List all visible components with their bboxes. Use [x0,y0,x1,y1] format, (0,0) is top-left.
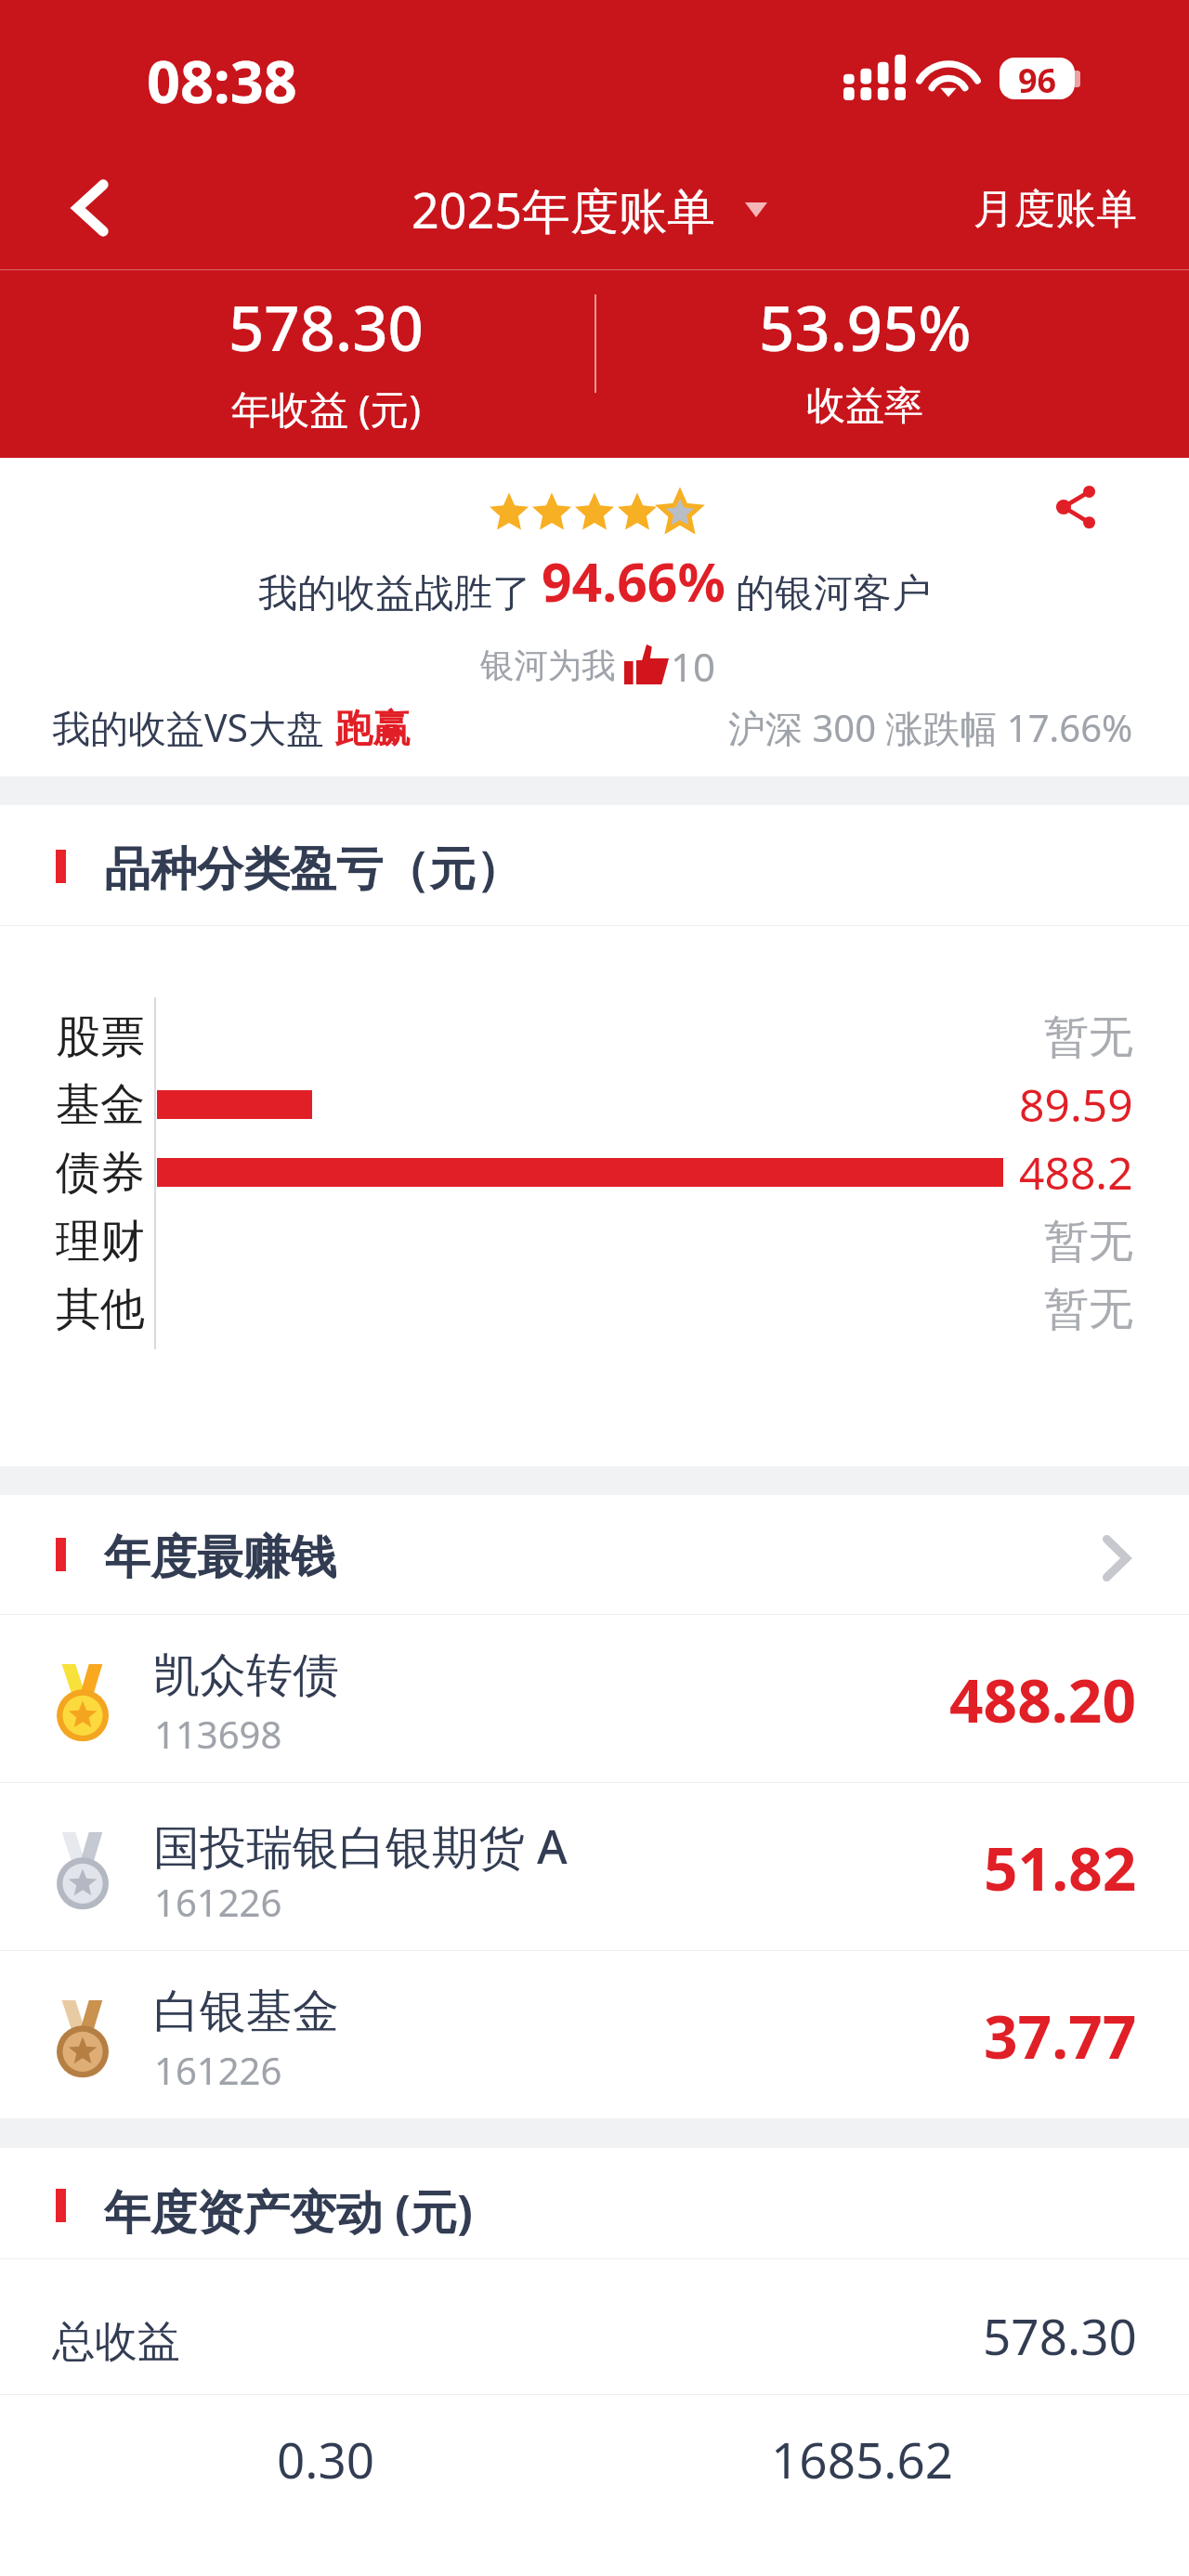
staticText: 国投瑞银白银期货 A [153,1815,568,1878]
staticText: 总收益 [52,2315,180,2369]
staticText: 其他 [56,1281,145,1337]
other: More [1103,1535,1130,1581]
staticText: 10 [671,640,716,693]
staticText: 2025年度账单 [412,176,715,242]
staticText: 37.77 [984,1996,1137,2076]
staticText: 收益率 [806,382,923,431]
staticText: 578.30 [983,2302,1137,2369]
staticText: 跑赢 [334,705,411,753]
staticText: 51.82 [984,1828,1137,1908]
staticText: 53.95% [759,284,972,369]
button[interactable]: Back [63,176,111,240]
staticText: 基金 [56,1077,145,1133]
button[interactable]: 国投瑞银白银期货 A [0,1783,1189,1950]
staticText: 0.30 [277,2426,375,2492]
staticText: 578.30 [229,284,424,369]
staticText: 股票 [56,1009,145,1065]
staticText: 08:38 [147,41,297,121]
staticText: 488.2 [1019,1142,1133,1203]
staticText: 96 [1018,58,1057,99]
staticText: 161226 [154,1877,282,1927]
staticText: 161226 [154,2045,282,2095]
staticText: 暂无 [1044,1009,1133,1065]
staticText: 凯众转债 [153,1646,339,1705]
staticText: 我的收益VS大盘 [52,701,334,753]
staticText: 488.20 [949,1659,1137,1740]
button[interactable]: 凯众转债 [0,1615,1189,1782]
staticText: 94.66% [542,545,725,618]
staticText: 沪深 300 涨跌幅 17.66% [728,702,1133,753]
button[interactable]: 年度最赚钱 [0,1495,1189,1614]
staticText: 债券 [56,1145,145,1201]
staticText: 银河为我 [480,644,616,687]
staticText: 白银基金 [153,1983,339,2041]
staticText: 113698 [154,1709,282,1759]
button[interactable]: 白银基金 [0,1951,1189,2118]
staticText: 理财 [56,1214,145,1269]
staticText: 月度账单 [973,184,1137,235]
staticText: 年度最赚钱 [104,1529,336,1587]
staticText: 年度资产变动 (元) [104,2179,473,2243]
button[interactable]: 2025年度账单 [412,176,767,242]
staticText: 89.59 [1019,1074,1133,1135]
staticText: 1685.62 [771,2426,954,2492]
staticText: 年收益 (元) [231,382,422,435]
button[interactable]: Share [1052,482,1100,530]
staticText: 暂无 [1044,1214,1133,1269]
staticText: 暂无 [1044,1281,1133,1337]
staticText: 我的收益战胜了 [258,565,542,618]
staticText: 品种分类盈亏（元） [104,840,522,899]
staticText: 的银河客户 [725,565,931,618]
button[interactable]: 月度账单 [973,184,1137,235]
